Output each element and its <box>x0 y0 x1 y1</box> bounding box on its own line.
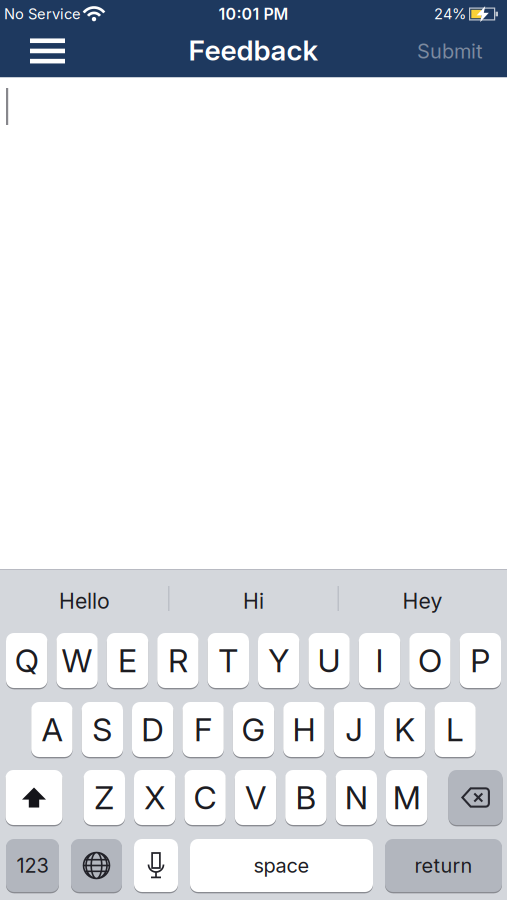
button[interactable] <box>0 40 65 65</box>
staticText: W <box>62 642 93 679</box>
staticText: J <box>345 711 363 748</box>
button[interactable]: A <box>31 702 73 757</box>
button[interactable]: K <box>384 702 425 757</box>
staticText: S <box>92 711 112 748</box>
staticText: I <box>375 642 383 679</box>
button[interactable]: B <box>285 770 327 825</box>
staticText: 123 <box>16 854 48 877</box>
staticText: 10:01 PM <box>218 5 288 23</box>
button[interactable]: N <box>336 770 377 825</box>
staticText: G <box>241 711 265 748</box>
staticText: space <box>253 854 309 877</box>
button[interactable]: E <box>107 633 148 688</box>
staticText: R <box>168 642 188 679</box>
button[interactable]: J <box>334 702 375 757</box>
staticText: T <box>218 642 238 679</box>
button[interactable]: V <box>235 770 276 825</box>
button[interactable]: F <box>182 702 224 757</box>
button[interactable]: G <box>233 702 274 757</box>
button[interactable]: R <box>157 633 199 688</box>
staticText: L <box>446 711 464 748</box>
staticText: Feedback <box>188 34 318 67</box>
button[interactable]: H <box>283 702 325 757</box>
staticText: F <box>194 711 212 748</box>
staticText: return <box>414 854 472 877</box>
button[interactable]: P <box>460 633 501 688</box>
button[interactable]: return <box>385 839 502 892</box>
button[interactable]: M <box>386 770 427 825</box>
staticText: E <box>118 642 137 679</box>
staticText: B <box>295 779 316 816</box>
staticText: No Service <box>4 5 81 23</box>
staticText: M <box>393 779 421 816</box>
staticText: Hey <box>402 588 442 614</box>
button[interactable] <box>71 839 122 892</box>
button[interactable]: D <box>132 702 173 757</box>
staticText: K <box>394 711 415 748</box>
staticText: V <box>245 779 266 816</box>
button[interactable]: X <box>134 770 175 825</box>
button[interactable]: Submit <box>417 41 507 65</box>
button[interactable] <box>134 839 178 892</box>
button[interactable]: L <box>434 702 476 757</box>
staticText: A <box>41 711 62 748</box>
button[interactable]: W <box>56 633 98 688</box>
button[interactable] <box>5 770 62 825</box>
staticText: P <box>470 642 490 679</box>
button[interactable]: Hi <box>169 569 338 628</box>
staticText: N <box>345 779 368 816</box>
button[interactable]: I <box>359 633 400 688</box>
button[interactable]: space <box>190 839 373 892</box>
staticText: H <box>292 711 315 748</box>
staticText: Z <box>94 779 114 816</box>
staticText: O <box>418 642 442 679</box>
button[interactable]: U <box>308 633 350 688</box>
button[interactable]: Q <box>6 633 47 688</box>
staticText: D <box>141 711 164 748</box>
staticText: Submit <box>417 39 483 63</box>
staticText: Q <box>15 642 39 679</box>
staticText: X <box>144 779 165 816</box>
staticText: Hi <box>243 588 264 614</box>
button[interactable]: S <box>82 702 123 757</box>
staticText: U <box>318 642 341 679</box>
staticText: 24% <box>434 5 466 23</box>
button[interactable]: T <box>208 633 249 688</box>
button[interactable]: C <box>184 770 226 825</box>
button[interactable]: Z <box>84 770 125 825</box>
button[interactable]: Hey <box>338 569 507 628</box>
button[interactable]: Hello <box>0 569 169 628</box>
staticText: C <box>194 779 217 816</box>
button[interactable]: Y <box>258 633 299 688</box>
button[interactable] <box>448 770 502 825</box>
staticText: Y <box>268 642 289 679</box>
staticText: Hello <box>59 588 110 614</box>
button[interactable]: 123 <box>6 839 59 892</box>
button[interactable]: O <box>409 633 451 688</box>
